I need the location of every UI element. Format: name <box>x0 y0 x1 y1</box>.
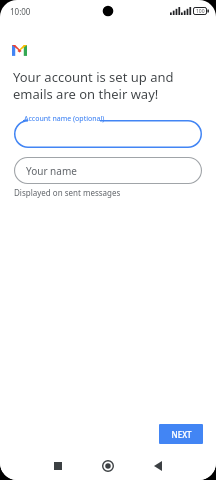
staticText: 100 <box>196 8 205 15</box>
staticText: Your account is set up and emails are on… <box>13 68 174 103</box>
button[interactable]: Back <box>148 456 168 476</box>
staticText: 10:00 <box>10 6 31 17</box>
staticText: Your name <box>26 164 77 178</box>
staticText: Account name (optional) <box>24 114 105 124</box>
button[interactable]: Account name (optional) <box>14 112 202 148</box>
button[interactable]: Your name <box>14 157 202 184</box>
button[interactable]: Recent apps <box>48 456 68 476</box>
button[interactable]: NEXT <box>159 424 203 444</box>
button[interactable]: Home <box>97 455 119 477</box>
staticText: Displayed on sent messages <box>14 187 121 198</box>
staticText: NEXT <box>171 429 192 440</box>
